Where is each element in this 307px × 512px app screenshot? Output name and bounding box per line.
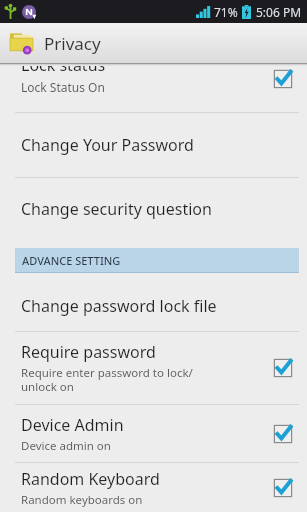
staticText: Privacy xyxy=(44,32,101,55)
staticText: Random keyboards on xyxy=(21,492,143,508)
button[interactable]: Toggle setting xyxy=(273,69,293,89)
button[interactable]: Change password lock file xyxy=(0,280,307,331)
staticText: Change Your Password xyxy=(21,134,194,156)
button[interactable]: Change Your Password xyxy=(0,113,307,177)
staticText: Require enter password to lock/ unlock o… xyxy=(21,365,193,395)
button[interactable]: Device Admin xyxy=(0,405,307,462)
staticText: Change password lock file xyxy=(21,295,217,317)
button[interactable]: Toggle setting xyxy=(273,478,293,498)
staticText: 5:06 PM xyxy=(256,4,302,20)
staticText: Change security question xyxy=(21,198,212,220)
staticText: Lock Status On xyxy=(21,79,105,95)
staticText: Require password xyxy=(21,341,156,363)
button[interactable]: Change security question xyxy=(0,178,307,240)
button[interactable]: Require password xyxy=(0,332,307,404)
staticText: Random Keyboard xyxy=(21,468,160,490)
button[interactable]: Toggle setting xyxy=(273,358,293,378)
staticText: Device Admin xyxy=(21,414,124,436)
staticText: ADVANCE SETTING xyxy=(22,253,121,268)
button[interactable]: Lock status xyxy=(0,66,307,112)
button[interactable]: Random Keyboard xyxy=(0,463,307,512)
staticText: Lock status xyxy=(21,66,106,76)
staticText: Device admin on xyxy=(21,438,111,454)
staticText: 71% xyxy=(214,4,238,20)
button[interactable]: Toggle setting xyxy=(273,424,293,444)
